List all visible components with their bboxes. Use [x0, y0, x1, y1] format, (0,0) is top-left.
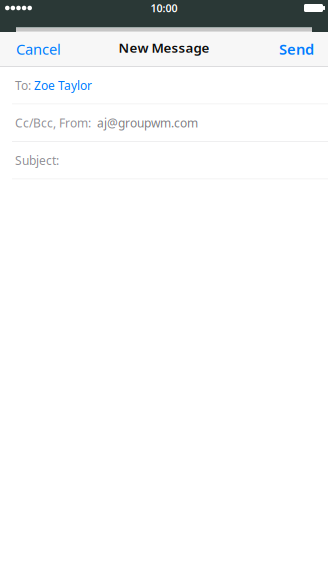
staticText: To:: [15, 77, 34, 93]
staticText: Cancel: [16, 39, 61, 59]
staticText: New Message: [118, 39, 209, 56]
button[interactable]: To: [0, 67, 328, 103]
button[interactable]: Send: [269, 32, 328, 66]
staticText: aj@groupwm.com: [91, 115, 198, 131]
button[interactable]: Subject: [0, 142, 328, 178]
button[interactable]: Cancel: [0, 32, 71, 66]
button[interactable]: Cc, Bcc, From: [0, 104, 328, 141]
staticText: Zoe Taylor: [34, 77, 92, 93]
staticText: Subject:: [15, 152, 59, 168]
staticText: Send: [279, 39, 314, 59]
staticText: 10:00: [150, 1, 177, 15]
staticText: Cc/Bcc, From:: [15, 115, 91, 131]
